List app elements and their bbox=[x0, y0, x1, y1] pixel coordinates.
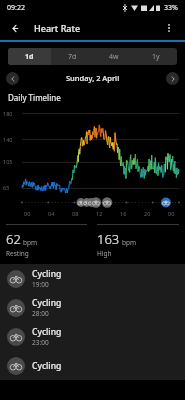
staticText: 140 bbox=[3, 136, 13, 143]
staticText: 180 bbox=[3, 110, 13, 117]
staticText: bpm bbox=[23, 238, 38, 247]
staticText: Cycling bbox=[32, 297, 62, 309]
staticText: Daily Timeline bbox=[8, 92, 61, 103]
button[interactable]: Next day bbox=[166, 72, 179, 85]
button[interactable]: 163 bbox=[97, 224, 179, 258]
staticText: 65 bbox=[3, 184, 10, 191]
button[interactable]: More options bbox=[159, 18, 179, 38]
staticText: 62 bbox=[6, 230, 21, 248]
staticText: High bbox=[97, 249, 112, 258]
staticText: bpm bbox=[122, 238, 137, 247]
button[interactable]: Back bbox=[6, 18, 26, 38]
staticText: Heart Rate bbox=[34, 22, 81, 34]
staticText: 00 bbox=[168, 210, 175, 217]
button[interactable]: Cycling bbox=[0, 322, 185, 351]
staticText: 28:00 bbox=[32, 309, 49, 318]
staticText: 20 bbox=[144, 210, 151, 217]
button[interactable]: 62 bbox=[6, 224, 87, 258]
button[interactable]: Cycling bbox=[0, 293, 185, 322]
button[interactable]: 4w bbox=[93, 48, 135, 65]
staticText: Resting bbox=[6, 249, 29, 258]
staticText: 08 bbox=[72, 210, 79, 217]
staticText: Cycling bbox=[32, 360, 62, 372]
button[interactable]: Cycling bbox=[0, 351, 185, 380]
staticText: 23:00 bbox=[32, 338, 49, 347]
staticText: 163 bbox=[97, 230, 120, 248]
staticText: Sunday, 2 April bbox=[66, 73, 120, 83]
staticText: 7d bbox=[68, 52, 77, 62]
staticText: 16 bbox=[120, 210, 127, 217]
staticText: 33% bbox=[164, 3, 178, 13]
staticText: 04 bbox=[48, 210, 55, 217]
staticText: 19:00 bbox=[32, 280, 49, 289]
staticText: 00 bbox=[24, 210, 31, 217]
button[interactable]: 7d bbox=[51, 48, 93, 65]
button[interactable]: Previous day bbox=[6, 72, 19, 85]
staticText: Cycling bbox=[32, 268, 62, 280]
staticText: 09:22 bbox=[7, 3, 25, 13]
staticText: 1d bbox=[25, 52, 34, 62]
button[interactable]: Cycling bbox=[0, 264, 185, 293]
staticText: Cycling bbox=[32, 326, 62, 338]
button[interactable]: 1y bbox=[135, 48, 177, 65]
button[interactable]: 1d bbox=[8, 48, 51, 65]
staticText: 12 bbox=[96, 210, 103, 217]
staticText: 1y bbox=[152, 52, 160, 62]
staticText: 105 bbox=[3, 158, 13, 165]
staticText: 4w bbox=[109, 52, 119, 62]
